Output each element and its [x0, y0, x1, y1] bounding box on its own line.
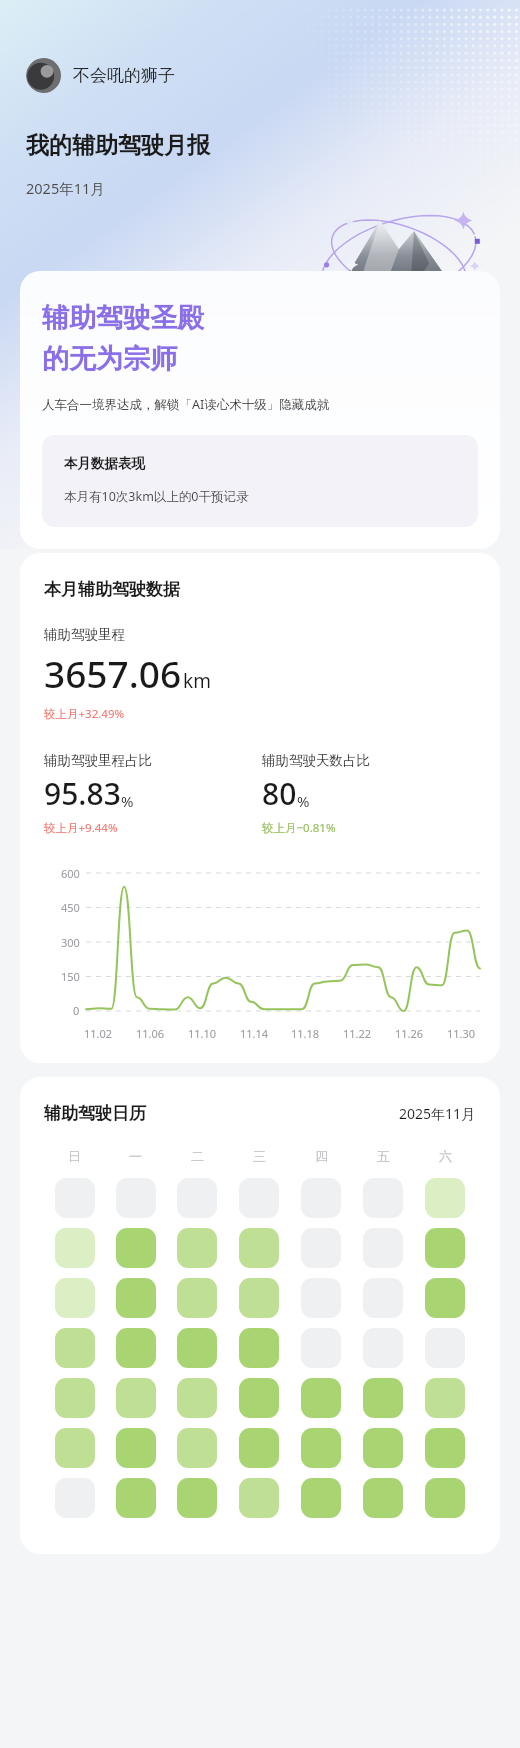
button[interactable]: 日期	[239, 1178, 279, 1218]
button[interactable]: 日期	[425, 1228, 465, 1268]
staticText: 日	[68, 1148, 81, 1164]
button[interactable]: 日期	[55, 1228, 95, 1268]
button[interactable]: 日期	[116, 1328, 156, 1368]
staticText: 11.26	[395, 1026, 424, 1041]
staticText: 80	[262, 773, 297, 814]
staticText: 11.22	[343, 1026, 372, 1041]
button[interactable]: 日期	[116, 1278, 156, 1318]
staticText: 不会吼的狮子	[73, 65, 175, 86]
staticText: 四	[315, 1148, 328, 1164]
button[interactable]: 辅助驾驶日历	[20, 1077, 500, 1554]
staticText: 较上月−0.81%	[262, 820, 336, 836]
button[interactable]: 日期	[55, 1328, 95, 1368]
button[interactable]: 日期	[116, 1228, 156, 1268]
button[interactable]: 日期	[55, 1478, 95, 1518]
staticText: 95.83	[44, 773, 121, 814]
staticText: 的无为宗师	[42, 342, 177, 376]
staticText: 辅助驾驶日历	[44, 1103, 146, 1124]
button[interactable]: 日期	[177, 1378, 217, 1418]
button[interactable]: 日期	[116, 1378, 156, 1418]
button[interactable]: 日期	[177, 1328, 217, 1368]
staticText: 0	[73, 1003, 80, 1018]
button[interactable]: 日期	[55, 1428, 95, 1468]
staticText: 11.10	[188, 1026, 217, 1041]
button[interactable]: 日期	[363, 1228, 403, 1268]
button[interactable]: 日期	[177, 1428, 217, 1468]
button[interactable]: 日期	[301, 1228, 341, 1268]
button[interactable]: 日期	[363, 1428, 403, 1468]
staticText: 较上月+9.44%	[44, 820, 118, 836]
staticText: 三	[253, 1148, 266, 1164]
staticText: 辅助驾驶里程占比	[44, 752, 152, 769]
button[interactable]: 不会吼的狮子	[26, 58, 185, 93]
staticText: 我的辅助驾驶月报	[26, 131, 210, 160]
staticText: 较上月+32.49%	[44, 706, 125, 722]
button[interactable]: 日期	[239, 1278, 279, 1318]
staticText: 3657.06	[44, 648, 182, 698]
button[interactable]: 日期	[239, 1478, 279, 1518]
button[interactable]: 日期	[55, 1378, 95, 1418]
button[interactable]: 日期	[363, 1478, 403, 1518]
staticText: 450	[61, 900, 80, 915]
button[interactable]: 日期	[177, 1178, 217, 1218]
button[interactable]: 日期	[239, 1428, 279, 1468]
button[interactable]: 本月辅助驾驶数据	[20, 553, 500, 1063]
button[interactable]: 日期	[55, 1178, 95, 1218]
staticText: 本月有10次3km以上的0干预记录	[64, 488, 249, 505]
button[interactable]: 日期	[239, 1378, 279, 1418]
button[interactable]: 日期	[116, 1428, 156, 1468]
staticText: 辅助驾驶天数占比	[262, 752, 370, 769]
button[interactable]: 日期	[363, 1278, 403, 1318]
staticText: km	[183, 668, 211, 694]
button[interactable]: 日期	[425, 1428, 465, 1468]
staticText: 11.06	[136, 1026, 165, 1041]
button[interactable]: 日期	[239, 1228, 279, 1268]
staticText: 300	[61, 935, 80, 950]
staticText: 11.30	[447, 1026, 476, 1041]
staticText: 二	[191, 1148, 204, 1164]
button[interactable]: 辅助驾驶圣殿	[20, 271, 500, 549]
button[interactable]: 日期	[363, 1378, 403, 1418]
staticText: 2025年11月	[26, 178, 105, 198]
staticText: 一	[129, 1148, 142, 1164]
staticText: 2025年11月	[399, 1104, 476, 1123]
button[interactable]: 日期	[425, 1478, 465, 1518]
button[interactable]: 日期	[425, 1378, 465, 1418]
staticText: 11.18	[291, 1026, 320, 1041]
button[interactable]: 日期	[301, 1278, 341, 1318]
staticText: 本月辅助驾驶数据	[44, 579, 180, 600]
button[interactable]: 日期	[301, 1428, 341, 1468]
staticText: 辅助驾驶圣殿	[42, 301, 204, 335]
button[interactable]: 日期	[425, 1278, 465, 1318]
staticText: 600	[61, 866, 80, 881]
staticText: 11.02	[84, 1026, 113, 1041]
button[interactable]: 日期	[55, 1278, 95, 1318]
button[interactable]: 日期	[301, 1178, 341, 1218]
staticText: 11.14	[240, 1026, 269, 1041]
staticText: 五	[377, 1148, 390, 1164]
staticText: 辅助驾驶里程	[44, 626, 125, 643]
button[interactable]: 日期	[239, 1328, 279, 1368]
staticText: 六	[439, 1148, 452, 1164]
staticText: %	[297, 791, 310, 811]
button[interactable]: 日期	[363, 1178, 403, 1218]
button[interactable]: 日期	[425, 1328, 465, 1368]
button[interactable]: 日期	[425, 1178, 465, 1218]
staticText: 人车合一境界达成，解锁「AI读心术十级」隐藏成就	[42, 396, 330, 413]
staticText: 150	[61, 969, 80, 984]
button[interactable]: 日期	[301, 1378, 341, 1418]
staticText: 本月数据表现	[64, 455, 145, 472]
button[interactable]: 日期	[301, 1478, 341, 1518]
button[interactable]: 日期	[301, 1328, 341, 1368]
button[interactable]: 日期	[177, 1278, 217, 1318]
button[interactable]: 日期	[177, 1228, 217, 1268]
button[interactable]: 日期	[116, 1478, 156, 1518]
button[interactable]: 日期	[363, 1328, 403, 1368]
staticText: %	[121, 791, 134, 811]
button[interactable]: 日期	[116, 1178, 156, 1218]
button[interactable]: 日期	[177, 1478, 217, 1518]
